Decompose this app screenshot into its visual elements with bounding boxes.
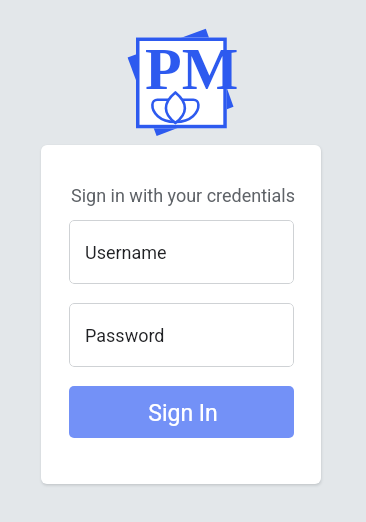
button[interactable]: Username <box>69 220 294 284</box>
staticText: Password <box>85 325 165 346</box>
button[interactable]: Sign In <box>69 386 294 438</box>
staticText: PM <box>145 36 239 102</box>
button[interactable]: Password <box>69 303 294 367</box>
staticText: Sign in with your credentials <box>71 185 295 206</box>
staticText: Sign In <box>148 400 218 427</box>
staticText: Username <box>85 242 167 263</box>
